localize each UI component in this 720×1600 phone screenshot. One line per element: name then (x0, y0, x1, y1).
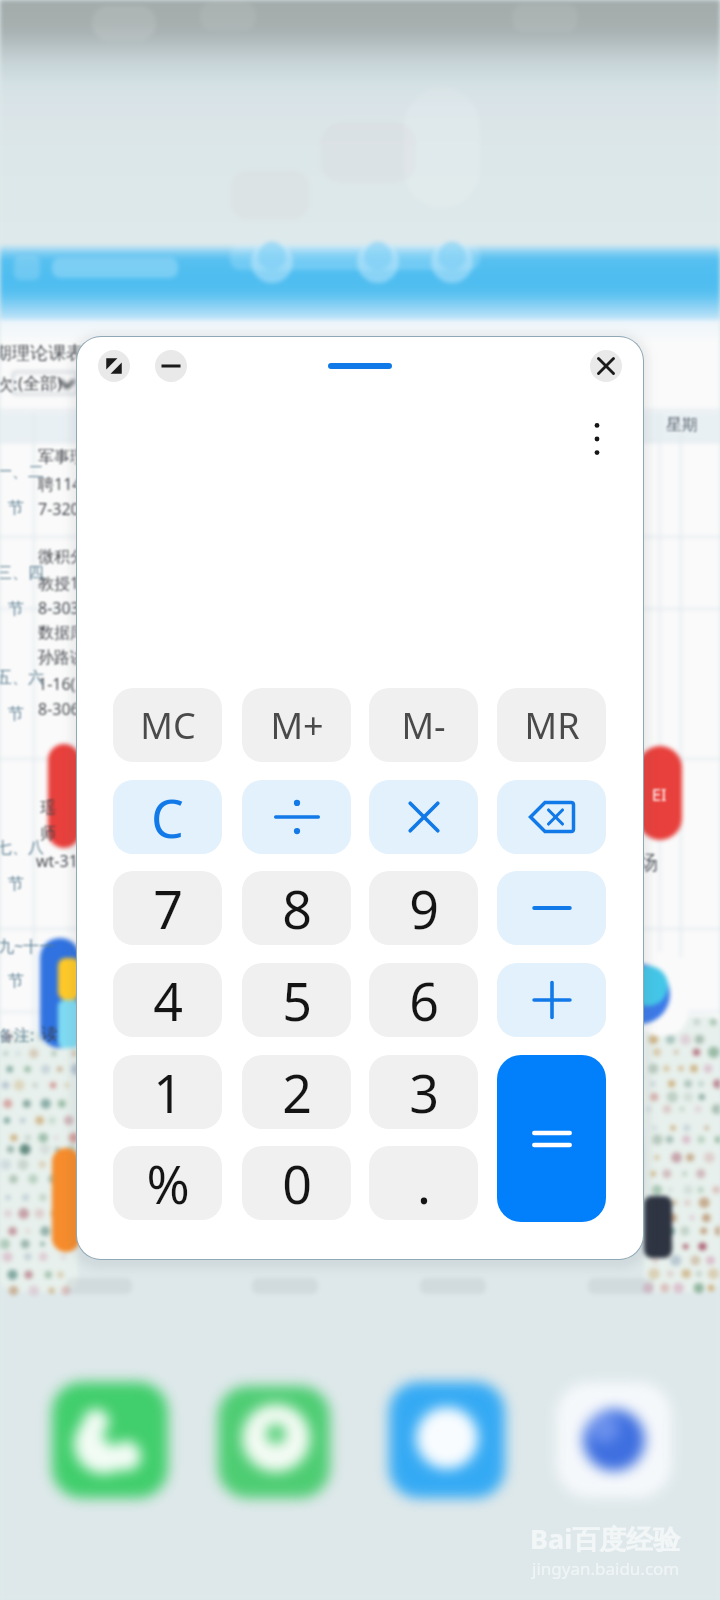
staticText: 一、二 (0, 462, 44, 482)
staticText: 0 (282, 1148, 312, 1219)
staticText: 瑶 (40, 798, 56, 818)
staticText: 节 (8, 599, 24, 619)
staticText: 九~十一 (0, 935, 56, 957)
staticText: 9 (409, 873, 439, 944)
button[interactable]: 8 (242, 871, 351, 945)
button[interactable]: M- (369, 688, 478, 762)
staticText: 期理论课表 (0, 342, 84, 365)
staticText: % (146, 1148, 190, 1219)
staticText: MC (140, 701, 196, 750)
staticText: 七、八 (0, 838, 44, 858)
staticText: 1 (153, 1057, 183, 1128)
staticText: 8-303( (38, 597, 85, 619)
button[interactable]: More options (575, 417, 619, 461)
staticText: 1-16(周 (38, 673, 92, 695)
staticText: 师 (40, 824, 56, 844)
button[interactable]: M+ (242, 688, 351, 762)
staticText: 星期 (666, 415, 698, 435)
staticText: 数据库 (38, 623, 86, 643)
staticText: 教授1- (38, 572, 85, 594)
staticText: Bai百度经验 (530, 1520, 681, 1557)
staticText: 孙路讲 (38, 648, 86, 668)
staticText: 6 (409, 965, 439, 1036)
button[interactable]: 3 (369, 1055, 478, 1129)
staticText: 三、四 (0, 563, 44, 583)
staticText: 聘114- (38, 473, 87, 495)
button[interactable]: Backspace (497, 780, 606, 854)
staticText: 5 (282, 965, 312, 1036)
button[interactable]: Divide (242, 780, 351, 854)
button[interactable]: 2 (242, 1055, 351, 1129)
button[interactable]: 0 (242, 1146, 351, 1220)
button[interactable]: 5 (242, 963, 351, 1037)
staticText: 节 (8, 498, 24, 518)
button[interactable]: 1 (113, 1055, 222, 1129)
button[interactable]: 9 (369, 871, 478, 945)
staticText: 次: (0, 372, 18, 395)
staticText: M- (401, 701, 446, 750)
staticText: MR (524, 701, 580, 750)
staticText: 7 (153, 873, 183, 944)
button[interactable]: Maximize (98, 350, 130, 382)
staticText: 读 (42, 1024, 58, 1044)
staticText: 8 (282, 873, 312, 944)
button[interactable]: MC (113, 688, 222, 762)
button[interactable]: Equals (497, 1055, 606, 1222)
staticText: 8-306( (38, 698, 85, 720)
button[interactable]: Minimize (155, 350, 187, 382)
staticText: 五、六 (0, 668, 44, 688)
button[interactable]: Move window (328, 363, 392, 369)
button[interactable]: 6 (369, 963, 478, 1037)
staticText: 节 (8, 874, 24, 894)
staticText: 节 (8, 704, 24, 724)
staticText: 备注: (0, 1024, 35, 1046)
button[interactable]: % (113, 1146, 222, 1220)
staticText: 场 (638, 850, 658, 875)
button[interactable]: 7 (113, 871, 222, 945)
staticText: . (417, 1148, 431, 1219)
staticText: 7-320( (38, 498, 85, 520)
staticText: 节 (8, 971, 24, 991)
staticText: jingyan.baidu.com (532, 1557, 680, 1580)
staticText: 微积分 (38, 547, 86, 567)
button[interactable]: MR (497, 688, 606, 762)
staticText: wt-31 (36, 850, 78, 872)
button[interactable]: 4 (113, 963, 222, 1037)
staticText: 3 (409, 1057, 439, 1128)
button[interactable]: Minus (497, 871, 606, 945)
button[interactable]: C (113, 780, 222, 854)
staticText: 4 (153, 965, 183, 1036)
staticText: EI (652, 784, 667, 806)
button[interactable]: Close (590, 350, 622, 382)
button[interactable]: Plus (497, 963, 606, 1037)
staticText: (全部) (18, 371, 63, 394)
button[interactable]: . (369, 1146, 478, 1220)
button[interactable]: Multiply (369, 780, 478, 854)
staticText: 军事理 (38, 447, 86, 467)
staticText: 2 (282, 1057, 312, 1128)
staticText: M+ (270, 701, 324, 750)
staticText: C (151, 782, 184, 853)
